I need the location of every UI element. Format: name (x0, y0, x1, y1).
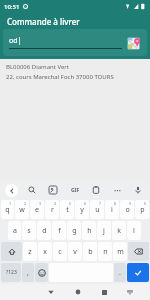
button[interactable]: Emoji (35, 263, 48, 282)
staticText: y (80, 205, 84, 215)
button[interactable]: Recents (91, 284, 118, 300)
staticText: t (66, 205, 69, 215)
button[interactable]: Stickers (46, 183, 60, 197)
staticText: 22, cours Marechal Foch 37000 TOURS (6, 73, 114, 81)
button[interactable]: , (22, 263, 34, 282)
staticText: r (51, 205, 54, 215)
staticText: i (111, 205, 113, 215)
button[interactable]: h (82, 221, 96, 240)
button[interactable]: Hide keyboard (118, 284, 142, 300)
button[interactable]: Back (37, 284, 64, 300)
button[interactable]: z (23, 242, 37, 261)
button[interactable]: BL00006 Diamant Vert (6, 63, 144, 81)
staticText: od (9, 36, 18, 46)
staticText: 2 (24, 201, 27, 206)
button[interactable]: Voice input (131, 183, 145, 197)
staticText: Commande à livrer (7, 16, 80, 27)
staticText: GIF (71, 187, 80, 194)
button[interactable]: GIF (68, 183, 82, 197)
staticText: j (103, 226, 105, 236)
button[interactable]: t (60, 200, 74, 219)
staticText: h (87, 226, 92, 236)
staticText: c (58, 247, 62, 257)
staticText: 4 (54, 201, 57, 206)
staticText: 7 (99, 201, 102, 206)
staticText: 0 (144, 201, 147, 206)
staticText: . (119, 268, 121, 278)
button[interactable]: Backspace (128, 242, 149, 261)
button[interactable]: f (52, 221, 66, 240)
button[interactable]: s (22, 221, 36, 240)
staticText: g (72, 226, 77, 236)
staticText: 9 (129, 201, 132, 206)
staticText: n (103, 247, 108, 257)
staticText: m (117, 247, 124, 257)
button[interactable]: g (67, 221, 81, 240)
button[interactable]: l (127, 221, 141, 240)
staticText: BL00006 Diamant Vert (6, 63, 69, 71)
staticText: b (88, 247, 93, 257)
button[interactable]: a (8, 221, 21, 240)
staticText: p (140, 205, 145, 215)
button[interactable]: w (15, 200, 29, 219)
button[interactable]: p (135, 200, 149, 219)
button[interactable]: Back (5, 184, 18, 197)
staticText: s (27, 226, 31, 236)
button[interactable]: m (113, 242, 127, 261)
button[interactable]: v (68, 242, 82, 261)
button[interactable]: Shift (1, 242, 22, 261)
button[interactable]: b (83, 242, 97, 261)
staticText: k (117, 226, 121, 236)
button[interactable]: y (75, 200, 89, 219)
staticText: o (125, 205, 130, 215)
staticText: 3 (39, 201, 42, 206)
button[interactable]: n (98, 242, 112, 261)
staticText: e (35, 205, 39, 215)
button[interactable]: u (90, 200, 104, 219)
button[interactable]: Enter (127, 263, 149, 282)
staticText: 5 (69, 201, 72, 206)
button[interactable]: x (38, 242, 52, 261)
staticText: d (42, 226, 47, 236)
button[interactable]: More options (110, 183, 124, 197)
staticText: z (28, 247, 32, 257)
button[interactable]: Home (64, 284, 91, 300)
staticText: x (43, 247, 47, 257)
button[interactable]: . (114, 263, 126, 282)
staticText: 8 (114, 201, 117, 206)
button[interactable]: i (105, 200, 119, 219)
button[interactable]: Clipboard (89, 183, 103, 197)
staticText: u (95, 205, 100, 215)
staticText: q (5, 205, 10, 215)
staticText: f (58, 226, 61, 236)
staticText: , (27, 268, 29, 278)
button[interactable]: j (97, 221, 111, 240)
button[interactable]: c (53, 242, 67, 261)
button[interactable]: Open map (126, 35, 142, 51)
staticText: a (13, 226, 17, 236)
button[interactable]: d (37, 221, 51, 240)
button[interactable]: q (1, 200, 14, 219)
button[interactable]: o (120, 200, 134, 219)
staticText: l (133, 226, 135, 236)
staticText: ?123 (6, 269, 17, 276)
button[interactable]: ?123 (1, 263, 21, 282)
staticText: 6 (84, 201, 87, 206)
button[interactable]: e (30, 200, 44, 219)
staticText: v (73, 247, 77, 257)
staticText: 10:51 (4, 3, 20, 11)
button[interactable]: Search (25, 183, 39, 197)
staticText: w (19, 205, 25, 215)
button[interactable]: k (112, 221, 126, 240)
button[interactable]: r (45, 200, 59, 219)
staticText: 1 (9, 201, 12, 206)
